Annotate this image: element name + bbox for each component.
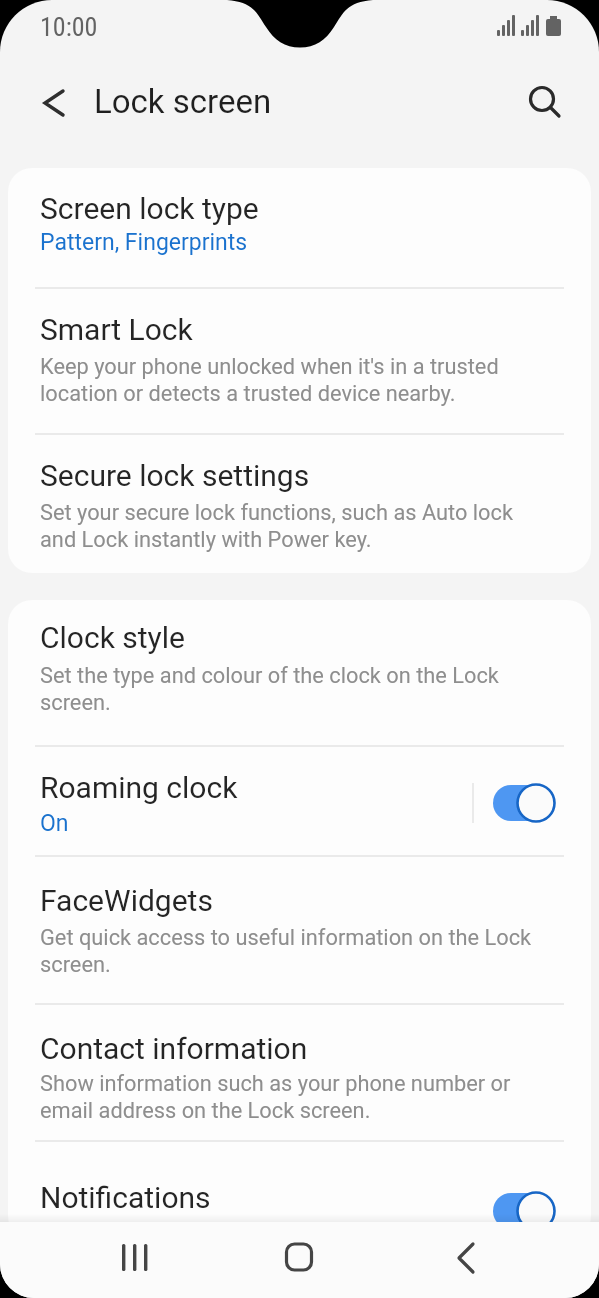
button[interactable] (110, 1234, 158, 1282)
staticText: Notifications (40, 1180, 211, 1215)
staticText: 10:00 (40, 12, 98, 42)
staticText: On (40, 810, 69, 837)
button[interactable] (521, 78, 569, 126)
staticText: Get quick access to useful information o… (40, 925, 532, 977)
staticText: Keep your phone unlocked when it's in a … (40, 354, 499, 406)
button[interactable] (8, 747, 591, 855)
button[interactable] (8, 289, 591, 433)
button[interactable] (8, 435, 591, 573)
button[interactable] (8, 600, 591, 745)
staticText: Smart Lock (40, 312, 193, 347)
staticText: Clock style (40, 620, 185, 655)
staticText: Screen lock type (40, 191, 259, 226)
button[interactable] (446, 1234, 494, 1282)
button[interactable] (30, 81, 74, 125)
button[interactable] (8, 1142, 591, 1240)
staticText: Set your secure lock functions, such as … (40, 500, 513, 552)
staticText: Show information such as your phone numb… (40, 1071, 511, 1123)
staticText: Secure lock settings (40, 458, 310, 493)
staticText: Set the type and colour of the clock on … (40, 663, 499, 715)
button[interactable] (8, 168, 591, 287)
button[interactable] (8, 857, 591, 1003)
staticText: Lock screen (94, 82, 272, 121)
button[interactable] (275, 1234, 323, 1282)
staticText: FaceWidgets (40, 883, 213, 918)
staticText: Roaming clock (40, 770, 238, 805)
staticText: Contact information (40, 1031, 308, 1066)
staticText: Pattern, Fingerprints (40, 229, 248, 256)
button[interactable] (8, 1005, 591, 1140)
